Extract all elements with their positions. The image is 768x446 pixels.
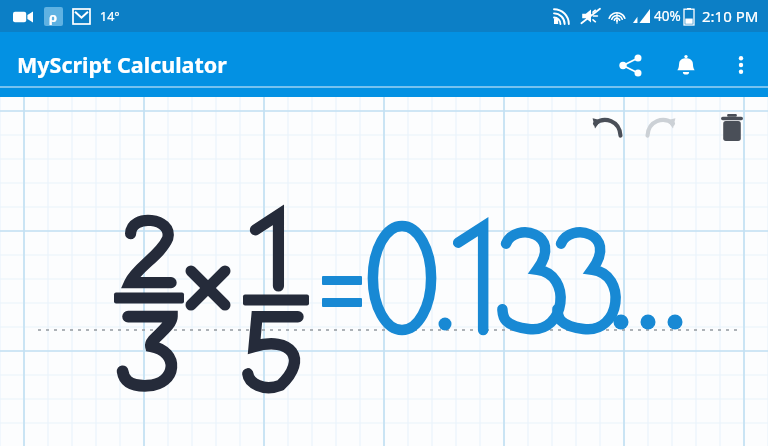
button[interactable]: Delete (708, 103, 756, 151)
staticText: MyScript Calculator (17, 50, 227, 79)
staticText: 14° (100, 8, 120, 25)
button[interactable]: Notifications (658, 35, 714, 95)
staticText: 2:10 PM (702, 6, 759, 26)
button[interactable]: Redo (634, 103, 688, 151)
button[interactable]: More options (714, 35, 768, 95)
button[interactable]: Share (602, 35, 658, 95)
button[interactable]: Undo (580, 103, 634, 151)
staticText: ρ (49, 8, 58, 26)
staticText: 40% (654, 7, 681, 25)
